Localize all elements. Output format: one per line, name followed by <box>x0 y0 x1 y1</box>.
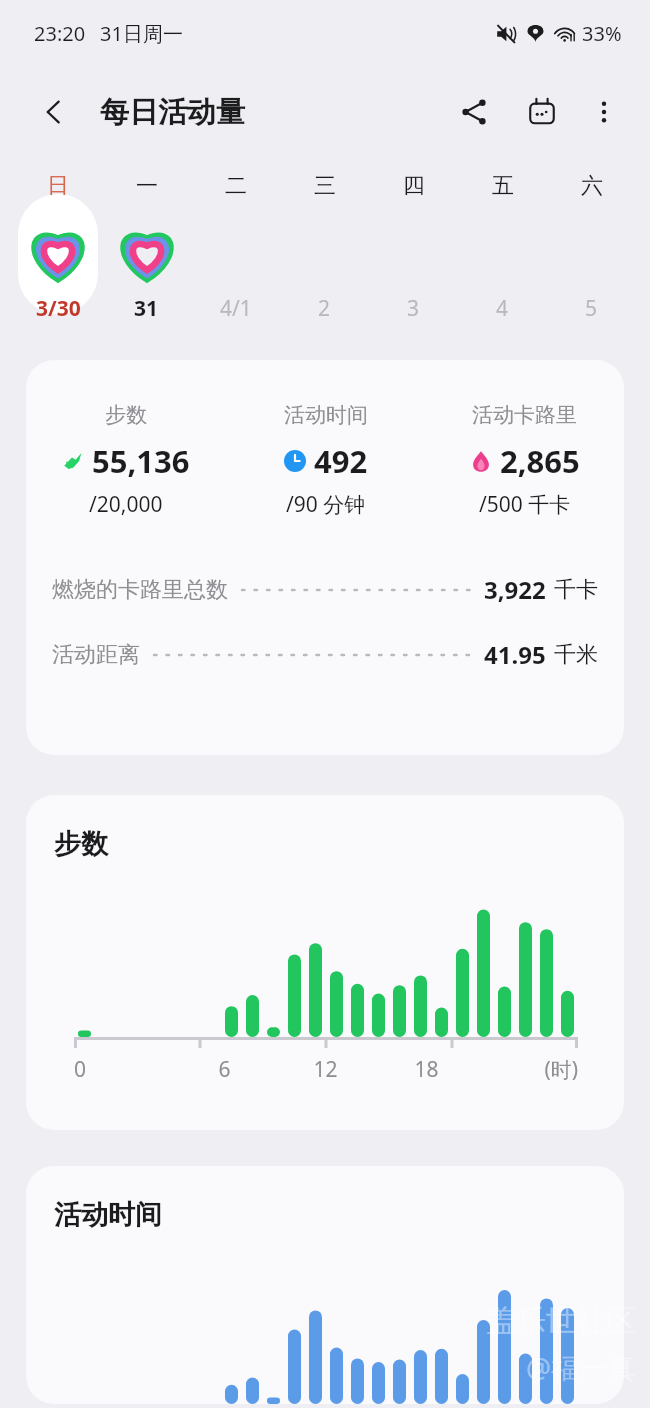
staticText: 492 <box>314 440 368 482</box>
staticText: 3 <box>407 294 420 323</box>
button[interactable]: 活动距离 <box>52 638 598 671</box>
staticText: 55,136 <box>92 440 190 482</box>
button[interactable]: Share <box>450 88 498 136</box>
staticText: /90 分钟 <box>286 490 366 519</box>
staticText: 12 <box>275 1055 376 1084</box>
button[interactable]: 活动时间 <box>26 1166 624 1404</box>
button[interactable]: 活动卡路里 <box>425 402 624 519</box>
button[interactable]: 燃烧的卡路里总数 <box>52 573 598 606</box>
staticText: 千米 <box>554 641 598 669</box>
staticText: 41.95 <box>484 638 546 671</box>
staticText: @福一真 <box>526 1348 636 1386</box>
staticText: 33% <box>582 20 622 47</box>
staticText: 三 <box>314 172 336 200</box>
button[interactable]: Back <box>34 92 74 132</box>
button[interactable]: 四 <box>369 158 458 338</box>
staticText: 0 <box>74 1055 174 1084</box>
staticText: 一 <box>136 172 158 200</box>
staticText: 四 <box>403 172 425 200</box>
button[interactable]: 步数 <box>26 795 624 1130</box>
staticText: 2,865 <box>500 440 580 482</box>
button[interactable]: 日 <box>14 158 102 338</box>
staticText: 活动时间 <box>284 402 368 428</box>
staticText: 4 <box>496 294 509 323</box>
button[interactable]: 六 <box>547 158 636 338</box>
button[interactable]: 活动时间 <box>226 402 425 519</box>
staticText: 23:20 <box>34 20 86 47</box>
button[interactable]: 步数 <box>26 402 226 519</box>
staticText: 盖乐世社区 <box>486 1302 636 1340</box>
staticText: 步数 <box>54 827 108 861</box>
staticText: 2 <box>318 294 331 323</box>
staticText: 31 <box>134 294 159 323</box>
staticText: 活动时间 <box>54 1198 162 1232</box>
staticText: 3,922 <box>484 573 546 606</box>
staticText: 六 <box>581 172 603 200</box>
staticText: 5 <box>585 294 598 323</box>
staticText: 6 <box>174 1055 275 1084</box>
staticText: 五 <box>492 172 514 200</box>
staticText: /500 千卡 <box>479 490 571 519</box>
button[interactable]: Calendar <box>518 88 566 136</box>
staticText: 每日活动量 <box>100 94 245 131</box>
staticText: 31日周一 <box>100 20 183 47</box>
staticText: 燃烧的卡路里总数 <box>52 576 228 604</box>
button[interactable]: 二 <box>191 158 280 338</box>
staticText: 日 <box>47 172 69 200</box>
button[interactable]: 步数 <box>26 360 624 755</box>
button[interactable]: More options <box>580 88 628 136</box>
staticText: 活动卡路里 <box>472 402 577 428</box>
button[interactable]: 五 <box>458 158 547 338</box>
button[interactable]: 三 <box>280 158 369 338</box>
staticText: /20,000 <box>89 490 163 519</box>
button[interactable]: 一 <box>102 158 191 338</box>
staticText: 4/1 <box>220 294 252 323</box>
staticText: (时) <box>477 1055 578 1084</box>
staticText: 18 <box>376 1055 477 1084</box>
staticText: 活动距离 <box>52 641 140 669</box>
staticText: 步数 <box>105 402 147 428</box>
staticText: 千卡 <box>554 576 598 604</box>
staticText: 二 <box>225 172 247 200</box>
staticText: 3/30 <box>36 294 81 323</box>
